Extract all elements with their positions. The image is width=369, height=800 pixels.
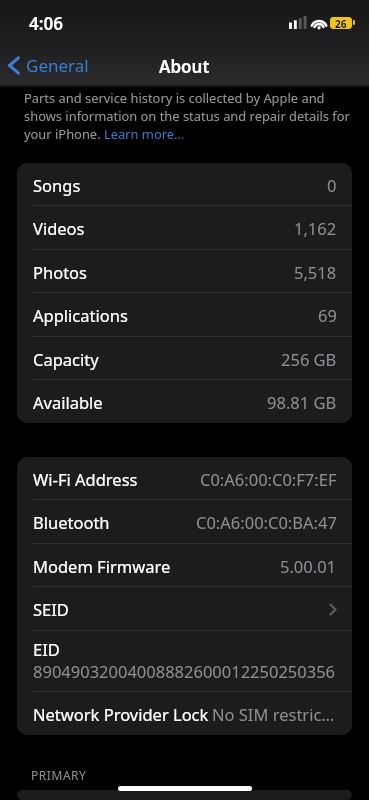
staticText: EID — [33, 638, 60, 660]
staticText: Capacity — [33, 348, 99, 370]
button[interactable]: Capacity — [17, 337, 352, 380]
staticText: Songs — [33, 174, 81, 196]
staticText: 89049032004008882600012250250356 — [33, 660, 336, 682]
staticText: 98.81 GB — [267, 391, 337, 413]
button[interactable]: Network Provider Lock — [17, 692, 352, 735]
staticText: Network Provider Lock — [33, 703, 209, 725]
button[interactable]: Applications — [17, 293, 352, 337]
staticText: Wi-Fi Address — [33, 468, 138, 490]
staticText: SEID — [33, 598, 69, 620]
staticText: C0:A6:00:C0:BA:47 — [196, 511, 337, 533]
staticText: Videos — [33, 217, 85, 239]
staticText: 26 — [335, 17, 347, 29]
button[interactable]: Bluetooth — [17, 500, 352, 544]
staticText: General — [26, 54, 89, 77]
button[interactable]: Wi-Fi Address — [17, 457, 352, 500]
button[interactable]: Photos — [17, 250, 352, 293]
button[interactable]: Videos — [17, 206, 352, 250]
staticText: 69 — [318, 304, 337, 326]
button[interactable]: SEID — [17, 587, 352, 631]
staticText: 5.00.01 — [280, 555, 337, 577]
button[interactable]: EID — [17, 631, 352, 692]
staticText: No SIM restricti… — [212, 703, 337, 725]
button[interactable]: General — [3, 51, 97, 80]
button[interactable]: Modem Firmware — [17, 544, 352, 587]
button[interactable]: Songs — [17, 163, 352, 206]
staticText: Photos — [33, 261, 88, 283]
staticText: 1,162 — [294, 217, 337, 239]
staticText: About — [159, 55, 210, 78]
staticText: C0:A6:00:C0:F7:EF — [200, 468, 337, 490]
other: Cellular signal — [289, 16, 307, 29]
staticText: Applications — [33, 304, 128, 326]
staticText: 256 GB — [281, 348, 337, 370]
staticText: Bluetooth — [33, 511, 110, 533]
staticText: 4:06 — [29, 12, 63, 35]
other: Open SEID — [329, 603, 337, 616]
staticText: PRIMARY — [31, 767, 87, 783]
button[interactable]: Available — [17, 380, 352, 423]
staticText: 0 — [327, 174, 337, 196]
staticText: Available — [33, 391, 103, 413]
other: Wi-Fi — [311, 17, 327, 29]
staticText: 5,518 — [294, 261, 337, 283]
staticText: Modem Firmware — [33, 555, 171, 577]
staticText: Parts and service history is collected b… — [24, 89, 355, 143]
